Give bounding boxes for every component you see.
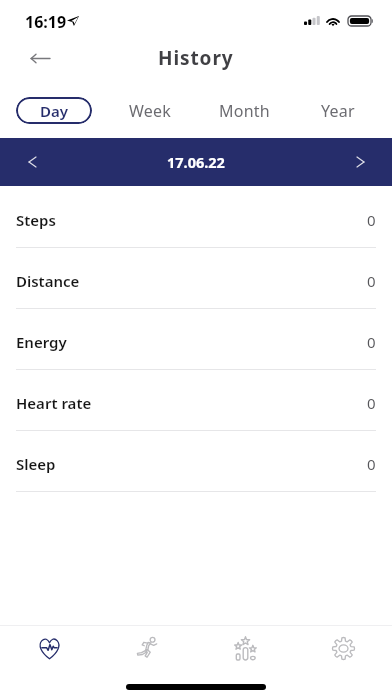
button[interactable]: Steps (0, 187, 392, 248)
button[interactable]: Achievements (196, 626, 294, 670)
button[interactable]: Month (204, 97, 284, 124)
button[interactable]: Sleep (0, 431, 392, 492)
button[interactable]: Heart rate (0, 370, 392, 431)
staticText: 0 (367, 332, 376, 352)
button[interactable]: Energy (0, 309, 392, 370)
staticText: Steps (16, 210, 56, 230)
button[interactable]: Previous day (0, 138, 64, 186)
button[interactable]: Distance (0, 248, 392, 309)
button[interactable]: Week (110, 97, 190, 124)
staticText: 17.06.22 (167, 152, 225, 172)
staticText: 0 (367, 210, 376, 230)
staticText: History (158, 45, 234, 71)
button[interactable]: Year (298, 97, 378, 124)
staticText: 0 (367, 393, 376, 413)
staticText: Month (219, 100, 270, 122)
button[interactable]: Back (18, 38, 62, 78)
staticText: 16:19 (25, 11, 67, 33)
staticText: 0 (367, 454, 376, 474)
staticText: Day (40, 101, 68, 121)
button[interactable]: Day (16, 97, 92, 124)
staticText: Year (321, 100, 355, 122)
button[interactable]: Health (0, 626, 98, 670)
button[interactable]: Activity (98, 626, 196, 670)
staticText: Heart rate (16, 393, 92, 413)
button[interactable]: Settings (294, 626, 392, 670)
button[interactable]: Next day (328, 138, 392, 186)
staticText: Distance (16, 271, 80, 291)
staticText: 0 (367, 271, 376, 291)
staticText: Week (129, 100, 172, 122)
staticText: Energy (16, 332, 67, 352)
staticText: Sleep (16, 454, 56, 474)
